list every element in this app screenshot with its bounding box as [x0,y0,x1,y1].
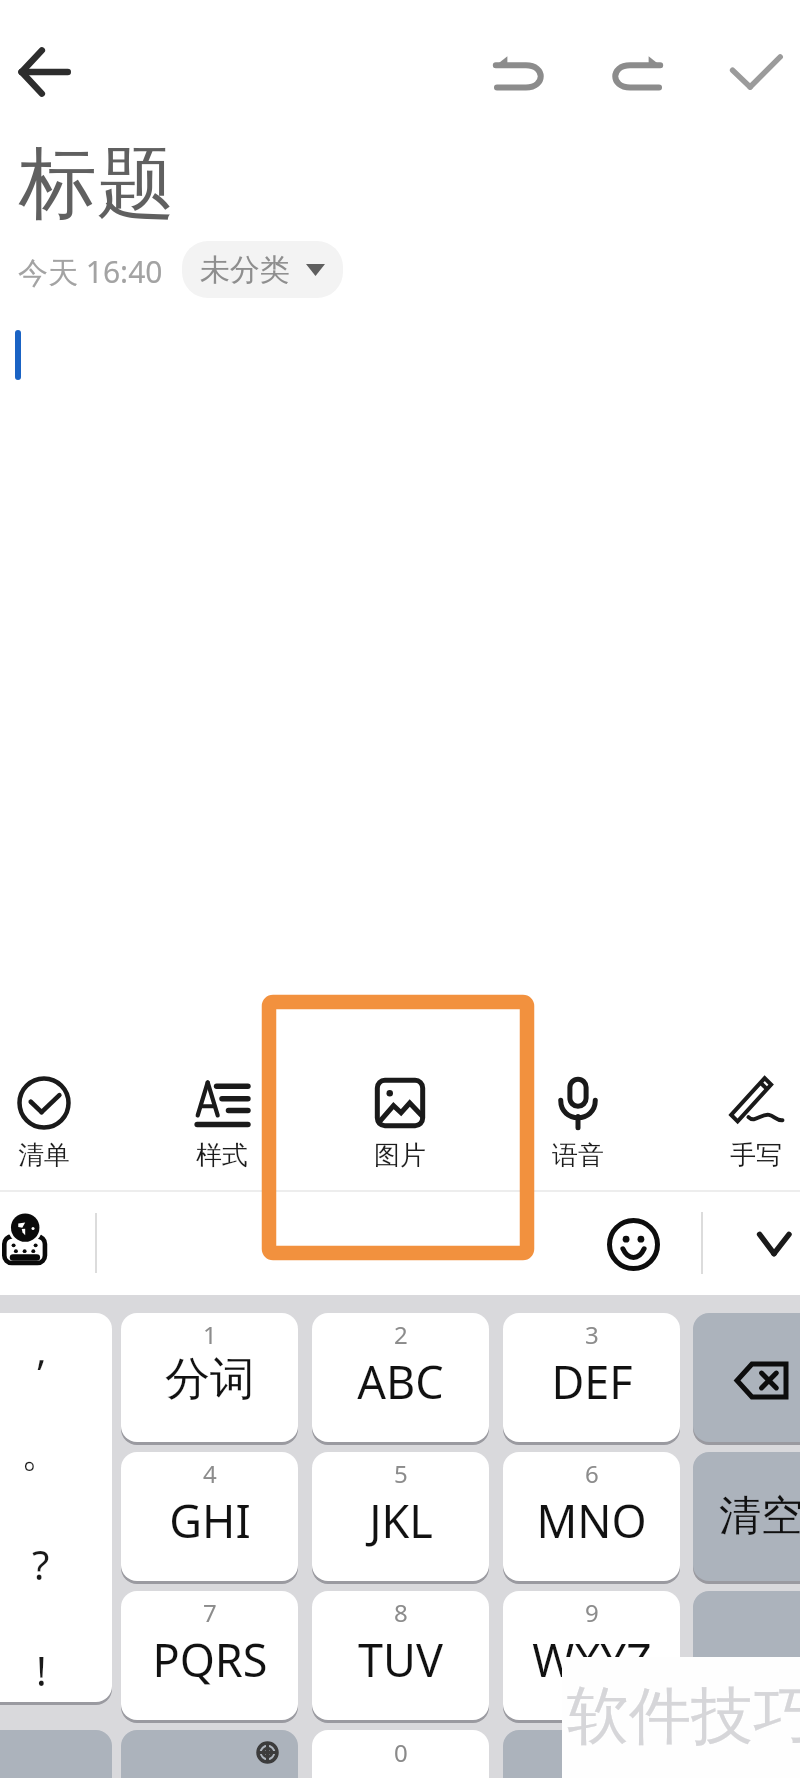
staticText: GHI [169,1490,251,1551]
staticText: 软件技巧 [567,1677,800,1755]
button[interactable]: 6 [503,1452,680,1581]
staticText: PQRS [152,1629,268,1690]
staticText: MNO [536,1490,647,1551]
staticText: TUV [358,1629,443,1690]
button[interactable]: 语音 [489,1050,667,1190]
button[interactable]: 4 [121,1452,298,1581]
button[interactable]: Enter [693,1730,800,1778]
staticText: 6 [585,1457,599,1490]
button[interactable]: Enter [693,1591,800,1720]
button[interactable]: Space [503,1730,680,1778]
button[interactable]: 图片 [311,1050,489,1190]
button[interactable]: 5 [312,1452,489,1581]
button[interactable]: 样式 [133,1050,311,1190]
staticText: 手写 [730,1139,782,1172]
button[interactable]: 手写 [667,1050,800,1190]
staticText: 语音 [552,1139,604,1172]
button[interactable]: Done [720,38,790,108]
staticText: 图片 [374,1139,426,1172]
button[interactable]: Backspace [693,1313,800,1442]
staticText: 8 [394,1596,408,1629]
button[interactable]: Back [8,36,80,108]
button[interactable]: Undo [484,38,554,108]
button[interactable]: Symbols [0,1730,112,1778]
button[interactable]: Hide keyboard [744,1214,800,1274]
button[interactable]: Emoji [600,1211,667,1278]
staticText: 7 [203,1596,217,1629]
staticText: 9 [585,1596,599,1629]
staticText: 5 [394,1457,408,1490]
staticText: 未分类 [200,251,290,289]
staticText: DEF [551,1351,633,1412]
staticText: ! [36,1643,47,1693]
staticText: ABC [357,1351,444,1412]
staticText: , [36,1322,47,1372]
button[interactable]: 0 [312,1730,489,1778]
staticText: 2 [394,1318,408,1351]
staticText: JKL [369,1490,433,1551]
button[interactable]: 清空 [693,1452,800,1581]
button[interactable]: Punctuation [0,1313,112,1702]
staticText: 样式 [196,1139,248,1172]
staticText: 0 [394,1736,408,1769]
staticText: 3 [585,1318,599,1351]
button[interactable]: Redo [602,38,672,108]
button[interactable]: Switch input language [2,1212,60,1270]
staticText: 标题 [19,135,175,233]
button[interactable]: 7 [121,1591,298,1720]
button[interactable]: 清单 [0,1050,133,1190]
button[interactable]: 3 [503,1313,680,1442]
staticText: WXYZ [532,1629,652,1690]
staticText: 1 [203,1318,217,1351]
staticText: 清单 [18,1139,70,1172]
staticText: ? [32,1537,50,1587]
button[interactable]: 1 [121,1313,298,1442]
staticText: 今天 16:40 [18,251,163,292]
button[interactable]: 8 [312,1591,489,1720]
staticText: 分词 [165,1351,255,1408]
button[interactable]: 2 [312,1313,489,1442]
button[interactable]: 未分类 [182,241,343,298]
staticText: 清空 [719,1490,800,1543]
staticText: 。 [21,1427,61,1477]
button[interactable]: 9 [503,1591,680,1720]
button[interactable]: Switch language [121,1730,298,1778]
staticText: 4 [203,1457,217,1490]
